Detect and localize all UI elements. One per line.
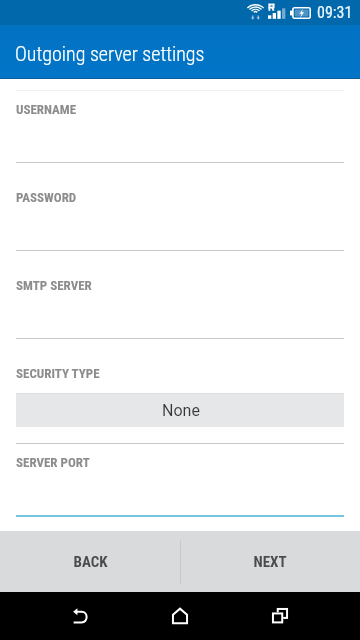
button[interactable]: Back <box>30 592 130 640</box>
button[interactable]: Home <box>130 592 230 640</box>
staticText: SMTP SERVER <box>16 278 92 293</box>
button[interactable]: None <box>16 393 344 427</box>
staticText: SERVER PORT <box>16 455 90 470</box>
staticText: PASSWORD <box>16 190 77 205</box>
staticText: SECURITY TYPE <box>16 366 100 381</box>
button[interactable]: NEXT <box>180 531 360 592</box>
staticText: None <box>162 401 200 420</box>
button[interactable]: BACK <box>0 531 180 592</box>
staticText: Outgoing server settings <box>15 42 205 65</box>
button[interactable]: Recent apps <box>230 592 330 640</box>
staticText: BACK <box>73 553 108 571</box>
staticText: NEXT <box>253 553 287 571</box>
staticText: 09:31 <box>317 3 353 22</box>
staticText: USERNAME <box>16 102 77 117</box>
